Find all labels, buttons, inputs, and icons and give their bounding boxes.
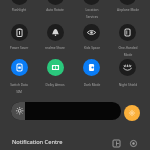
- staticText: Dark Mode: [73, 83, 111, 87]
- staticText: Airplane Mode: [109, 8, 147, 12]
- button[interactable]: Settings: [127, 137, 140, 150]
- staticText: Kids Space: [73, 46, 111, 50]
- button[interactable]: One-Handed Mode: [119, 24, 136, 41]
- button[interactable]: Auto brightness: [124, 105, 140, 121]
- staticText: Location Services: [73, 8, 111, 19]
- button[interactable]: Dark Mode: [83, 59, 100, 76]
- button[interactable]: Airplane Mode: [119, 0, 136, 5]
- staticText: realme Share: [36, 46, 74, 50]
- button[interactable]: Notification Centre: [12, 138, 63, 146]
- button[interactable]: Dolby Atmos: [47, 59, 64, 76]
- button[interactable]: Switch Data SIM: [11, 59, 28, 76]
- button[interactable]: Power Saver: [11, 24, 28, 41]
- button[interactable]: Night Shield: [119, 59, 136, 76]
- button[interactable]: Location Services: [83, 0, 100, 5]
- staticText: Auto Rotate: [36, 8, 74, 12]
- staticText: Flashlight: [0, 8, 38, 12]
- staticText: Power Saver: [0, 46, 38, 50]
- staticText: Notification Centre: [12, 138, 63, 146]
- button[interactable]: Auto Rotate: [47, 0, 64, 5]
- button[interactable]: Kids Space: [83, 24, 100, 41]
- button[interactable]: realme Share: [47, 24, 64, 41]
- staticText: Switch Data SIM: [0, 83, 38, 94]
- staticText: Night Shield: [109, 83, 147, 87]
- staticText: Dolby Atmos: [36, 83, 74, 87]
- button[interactable]: Edit tiles: [110, 137, 123, 150]
- staticText: One-Handed Mode: [109, 46, 147, 57]
- button[interactable]: Brightness: [11, 102, 121, 120]
- button[interactable]: Flashlight: [11, 0, 28, 5]
